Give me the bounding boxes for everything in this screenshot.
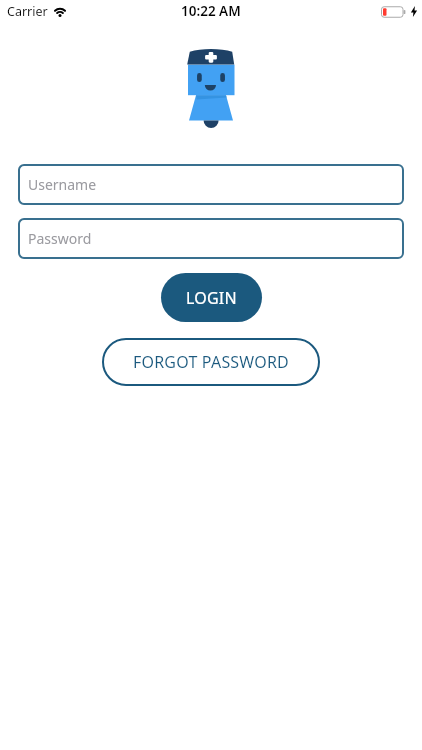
button[interactable]: LOGIN (161, 273, 262, 322)
button[interactable]: FORGOT PASSWORD (102, 338, 320, 386)
staticText: Password (28, 229, 92, 248)
button[interactable]: Username (18, 164, 404, 205)
staticText: FORGOT PASSWORD (133, 351, 289, 373)
staticText: 10:22 AM (181, 2, 241, 20)
button[interactable]: Password (18, 218, 404, 259)
staticText: Username (28, 175, 97, 194)
staticText: LOGIN (186, 287, 237, 309)
staticText: Carrier (7, 3, 48, 20)
